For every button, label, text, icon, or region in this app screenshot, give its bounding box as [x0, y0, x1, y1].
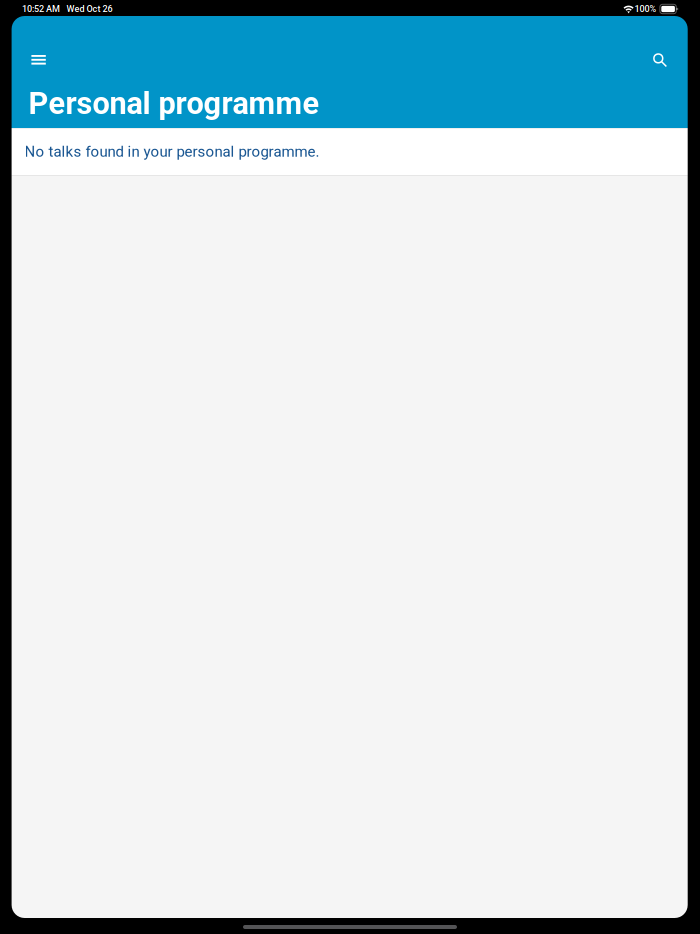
button[interactable]: Search	[639, 46, 688, 73]
staticText: 100%	[634, 4, 656, 14]
staticText: 10:52 AM	[22, 4, 60, 14]
staticText: Personal programme	[29, 86, 320, 121]
staticText: Wed Oct 26	[66, 4, 112, 14]
staticText: No talks found in your personal programm…	[25, 143, 320, 160]
button[interactable]: Menu	[12, 46, 60, 74]
